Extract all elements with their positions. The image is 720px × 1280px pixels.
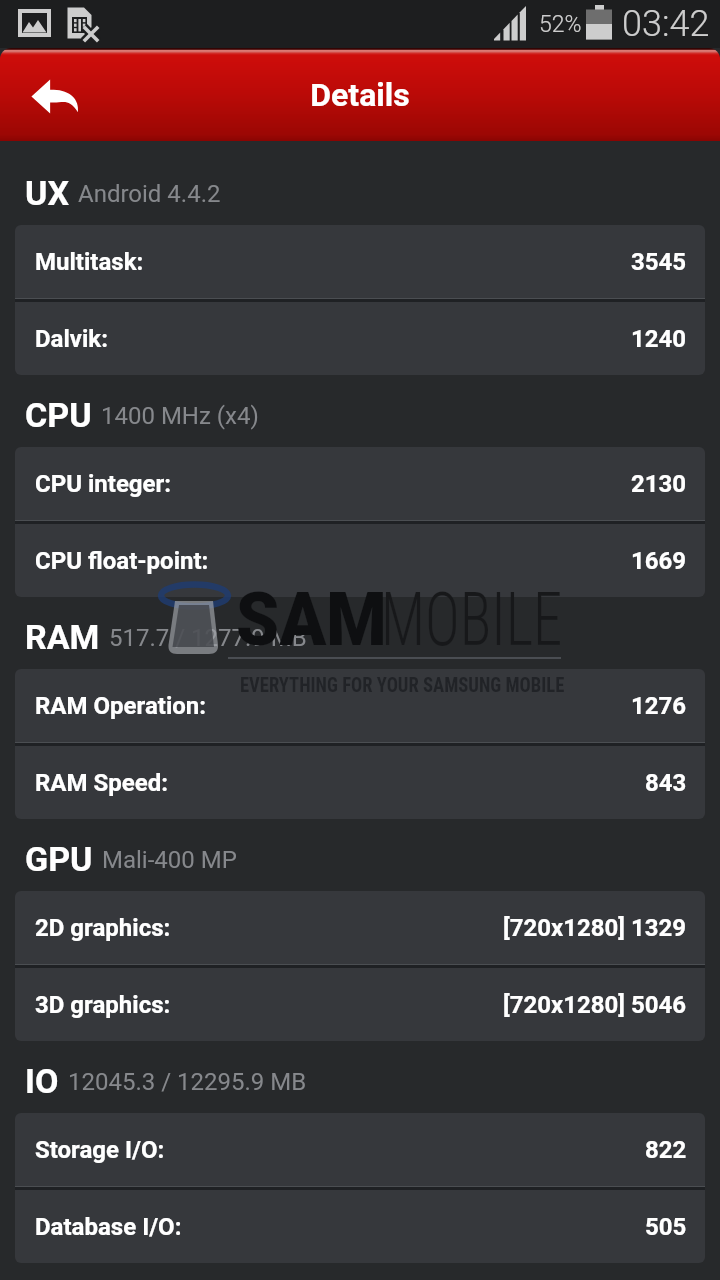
staticText: Mali-400 MP [102, 846, 237, 874]
staticText: [720x1280] 5046 [503, 991, 687, 1019]
staticText: 12045.3 / 12295.9 MB [68, 1068, 307, 1096]
staticText: CPU [25, 395, 92, 435]
button[interactable]: RAM Operation: [15, 669, 705, 742]
staticText: MOBILE [381, 575, 562, 663]
staticText: 2D graphics: [35, 914, 171, 942]
staticText: Android 4.4.2 [78, 180, 221, 208]
staticText: Database I/O: [35, 1213, 182, 1241]
button[interactable]: Back [0, 49, 92, 141]
staticText: 505 [645, 1213, 687, 1241]
staticText: Dalvik: [35, 325, 108, 353]
button[interactable]: Dalvik: [15, 302, 705, 375]
button[interactable]: Storage I/O: [15, 1113, 705, 1186]
staticText: 517.7 / 1277.9 MB [109, 624, 307, 652]
staticText: GPU [25, 839, 93, 879]
staticText: 822 [645, 1136, 687, 1164]
staticText: 52% [539, 11, 582, 38]
staticText: 1240 [631, 325, 687, 353]
button[interactable]: CPU float-point: [15, 524, 705, 597]
staticText: 1276 [631, 692, 687, 720]
staticText: SAM [236, 575, 387, 663]
button[interactable]: Database I/O: [15, 1190, 705, 1263]
staticText: 843 [645, 769, 687, 797]
staticText: EVERYTHING FOR YOUR SAMSUNG MOBILE [240, 673, 565, 698]
staticText: [720x1280] 1329 [503, 914, 687, 942]
button[interactable]: RAM Speed: [15, 746, 705, 819]
staticText: Details [310, 76, 410, 114]
staticText: RAM Speed: [35, 769, 168, 797]
staticText: RAM Operation: [35, 692, 207, 720]
staticText: RAM [25, 617, 100, 657]
staticText: 3545 [631, 248, 687, 276]
staticText: Storage I/O: [35, 1136, 165, 1164]
staticText: 2130 [631, 470, 687, 498]
staticText: IO [25, 1061, 59, 1101]
staticText: 1400 MHz (x4) [101, 402, 259, 430]
staticText: CPU float-point: [35, 547, 209, 575]
button[interactable]: CPU integer: [15, 447, 705, 520]
button[interactable]: 3D graphics: [15, 968, 705, 1041]
staticText: CPU integer: [35, 470, 172, 498]
button[interactable]: Multitask: [15, 225, 705, 298]
staticText: UX [25, 173, 69, 213]
staticText: 03:42 [622, 3, 710, 45]
staticText: 1669 [631, 547, 687, 575]
staticText: 3D graphics: [35, 991, 171, 1019]
button[interactable]: 2D graphics: [15, 891, 705, 964]
staticText: Multitask: [35, 248, 144, 276]
